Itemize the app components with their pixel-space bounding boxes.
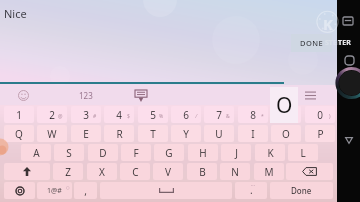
button[interactable]: Backspace xyxy=(286,163,333,180)
button[interactable]: 0 xyxy=(305,106,335,123)
staticText: 3 xyxy=(83,108,89,122)
button[interactable]: 3 xyxy=(71,106,101,123)
button[interactable]: Space xyxy=(100,182,232,199)
staticText: R xyxy=(116,127,123,141)
staticText: B xyxy=(199,165,206,179)
staticText: I xyxy=(251,127,255,141)
button[interactable]: J xyxy=(221,144,251,161)
button[interactable]: 6 xyxy=(171,106,201,123)
staticText: S xyxy=(66,146,72,160)
staticText: Done xyxy=(291,185,312,196)
staticText: Y xyxy=(183,127,189,141)
staticText: N xyxy=(231,165,239,179)
button[interactable]: 1 xyxy=(4,106,34,123)
staticText: 1 xyxy=(16,108,22,122)
staticText: DONE xyxy=(300,38,323,48)
button[interactable]: C xyxy=(120,163,150,180)
staticText: 123 xyxy=(79,90,93,101)
button[interactable]: Done xyxy=(270,182,333,199)
staticText: L xyxy=(300,146,306,160)
button[interactable]: 5 xyxy=(138,106,168,123)
staticText: K xyxy=(267,146,274,160)
button[interactable]: Emoji xyxy=(17,89,29,101)
button[interactable]: Settings xyxy=(4,182,35,199)
button[interactable]: Symbols xyxy=(37,182,72,199)
button[interactable]: K xyxy=(255,144,285,161)
button[interactable]: Hide keyboard xyxy=(134,89,147,102)
button[interactable]: R xyxy=(104,125,134,142)
button[interactable]: D xyxy=(88,144,118,161)
staticText: ⁄ xyxy=(196,113,197,120)
staticText: STER xyxy=(325,38,342,48)
button[interactable]: Keyboard menu xyxy=(304,89,317,102)
button[interactable]: H xyxy=(188,144,218,161)
staticText: E xyxy=(83,127,89,141)
button[interactable]: Q xyxy=(4,125,34,142)
button[interactable]: Recents xyxy=(340,13,356,29)
staticText: A xyxy=(33,146,40,160)
button[interactable]: X xyxy=(87,163,117,180)
staticText: 7 xyxy=(216,108,222,122)
button[interactable]: B xyxy=(187,163,217,180)
staticText: V xyxy=(165,165,171,179)
button[interactable]: E xyxy=(71,125,101,142)
button[interactable]: 4 xyxy=(104,106,134,123)
staticText: & xyxy=(226,113,230,120)
staticText: $ xyxy=(127,113,130,120)
button[interactable]: Back xyxy=(341,132,357,148)
button[interactable]: N xyxy=(220,163,250,180)
button[interactable]: G xyxy=(154,144,184,161)
staticText: 4 xyxy=(116,108,122,122)
button[interactable]: Z xyxy=(53,163,83,180)
button[interactable]: , xyxy=(74,182,97,199)
button[interactable]: 7 xyxy=(204,106,234,123)
staticText: # xyxy=(93,113,97,120)
staticText: @ xyxy=(58,113,63,120)
staticText: 2 xyxy=(49,108,55,122)
button[interactable]: Shift xyxy=(4,163,50,180)
staticText: ) xyxy=(329,113,331,120)
button[interactable]: M xyxy=(254,163,284,180)
staticText: G xyxy=(165,146,173,160)
button[interactable]: 2 xyxy=(37,106,67,123)
button[interactable]: A xyxy=(21,144,51,161)
staticText: Z xyxy=(65,165,71,179)
staticText: % xyxy=(159,113,164,120)
staticText: Q xyxy=(15,127,23,141)
button[interactable]: U xyxy=(204,125,234,142)
button[interactable]: S xyxy=(54,144,84,161)
staticText: * xyxy=(261,113,264,120)
button[interactable]: O xyxy=(271,125,301,142)
staticText: 8 xyxy=(250,108,256,122)
button[interactable]: Home xyxy=(341,52,357,68)
staticText: O xyxy=(276,91,293,120)
staticText: 1@# xyxy=(47,186,62,196)
staticText: D xyxy=(99,146,107,160)
staticText: W xyxy=(47,127,57,141)
button[interactable]: DONE xyxy=(291,34,332,52)
button[interactable]: I xyxy=(238,125,268,142)
staticText: TER xyxy=(338,38,352,48)
button[interactable]: V xyxy=(153,163,183,180)
button[interactable]: Y xyxy=(171,125,201,142)
staticText: J xyxy=(235,146,238,160)
staticText: H xyxy=(199,146,207,160)
staticText: . xyxy=(250,183,253,197)
staticText: 5 xyxy=(150,108,156,122)
button[interactable]: T xyxy=(138,125,168,142)
staticText: ○ xyxy=(66,185,70,190)
button[interactable]: L xyxy=(288,144,318,161)
button[interactable]: 8 xyxy=(238,106,268,123)
button[interactable]: Period xyxy=(235,182,267,199)
staticText: 6 xyxy=(183,108,189,122)
staticText: F xyxy=(133,146,139,160)
button[interactable]: W xyxy=(37,125,67,142)
button[interactable]: 9 xyxy=(271,106,301,123)
staticText: , xyxy=(84,184,87,198)
button[interactable]: P xyxy=(305,125,335,142)
staticText: 9 xyxy=(283,108,289,122)
staticText: U xyxy=(215,127,223,141)
staticText: X xyxy=(99,165,105,179)
button[interactable]: F xyxy=(121,144,151,161)
